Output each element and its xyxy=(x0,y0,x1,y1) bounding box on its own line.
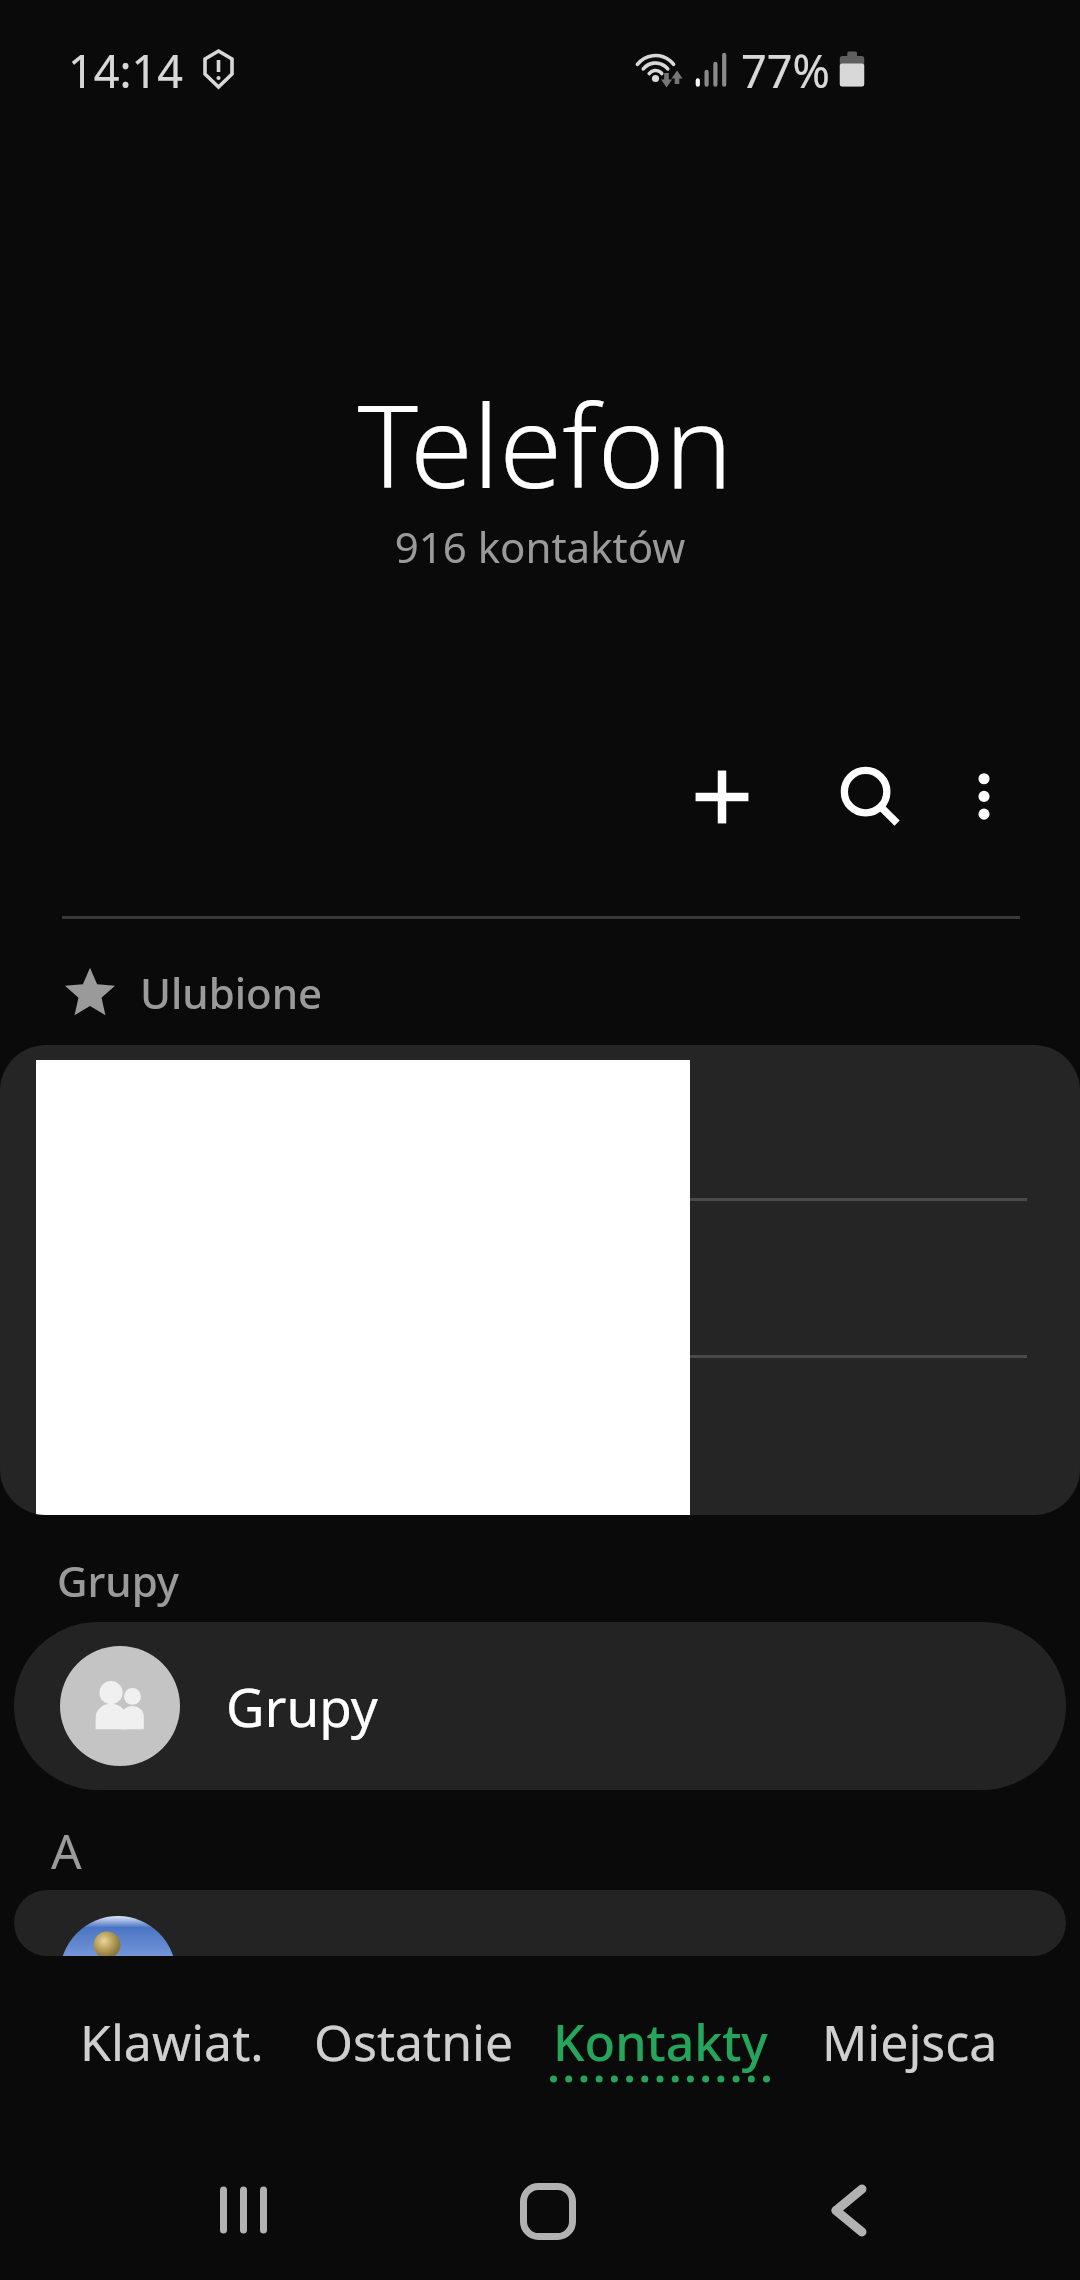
button[interactable] xyxy=(14,1890,1066,1956)
staticText: Miejsca xyxy=(822,2008,998,2076)
staticText: Grupy xyxy=(57,1552,180,1609)
button[interactable] xyxy=(0,1045,1080,1515)
staticText: 916 kontaktów xyxy=(0,518,1080,575)
staticText: 14:14 xyxy=(68,40,184,101)
staticText: Klawiat. xyxy=(80,2008,264,2076)
staticText: A xyxy=(51,1818,82,1883)
button[interactable]: Miejsca xyxy=(788,1960,1032,2152)
button[interactable]: Klawiat. xyxy=(50,1960,294,2152)
staticText: Telefon xyxy=(5,366,1080,521)
button[interactable]: Recent apps xyxy=(184,2156,304,2276)
staticText: Grupy xyxy=(226,1670,378,1742)
button[interactable]: Kontakty xyxy=(538,1960,782,2152)
staticText: 77% xyxy=(741,40,830,101)
staticText: Kontakty xyxy=(553,2008,768,2076)
button[interactable]: More options xyxy=(925,738,1043,856)
staticText: Ulubione xyxy=(140,964,323,1021)
button[interactable]: Back xyxy=(788,2156,908,2276)
staticText: Ostatnie xyxy=(314,2008,514,2076)
button[interactable]: Home xyxy=(486,2156,606,2276)
button[interactable]: Search xyxy=(806,738,924,856)
button[interactable]: Add contact xyxy=(663,738,781,856)
button[interactable]: Ostatnie xyxy=(292,1960,536,2152)
button[interactable]: Grupy xyxy=(14,1622,1066,1790)
